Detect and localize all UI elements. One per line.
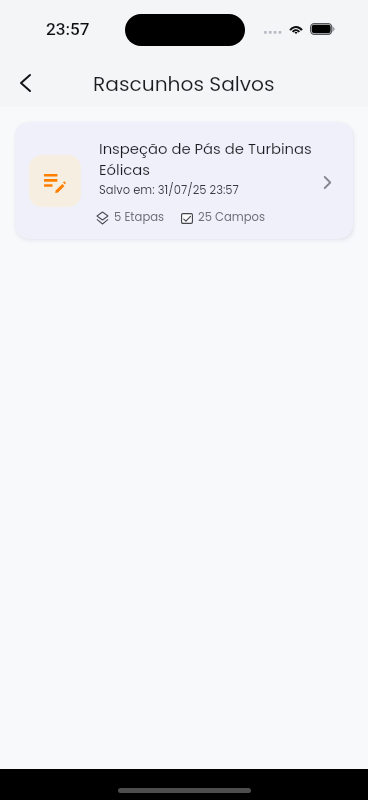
staticText: Rascunhos Salvos	[93, 70, 275, 98]
staticText: 5 Etapas	[114, 209, 165, 225]
staticText: Inspeção de Pás de Turbinas Eólicas	[99, 138, 321, 180]
staticText: 25 Campos	[198, 209, 266, 225]
button[interactable]: Voltar	[2, 60, 47, 105]
staticText: Salvo em: 31/07/25 23:57	[99, 182, 239, 198]
staticText: 23:57	[46, 19, 90, 39]
button[interactable]: Inspeção de Pás de Turbinas Eólicas	[15, 122, 353, 239]
